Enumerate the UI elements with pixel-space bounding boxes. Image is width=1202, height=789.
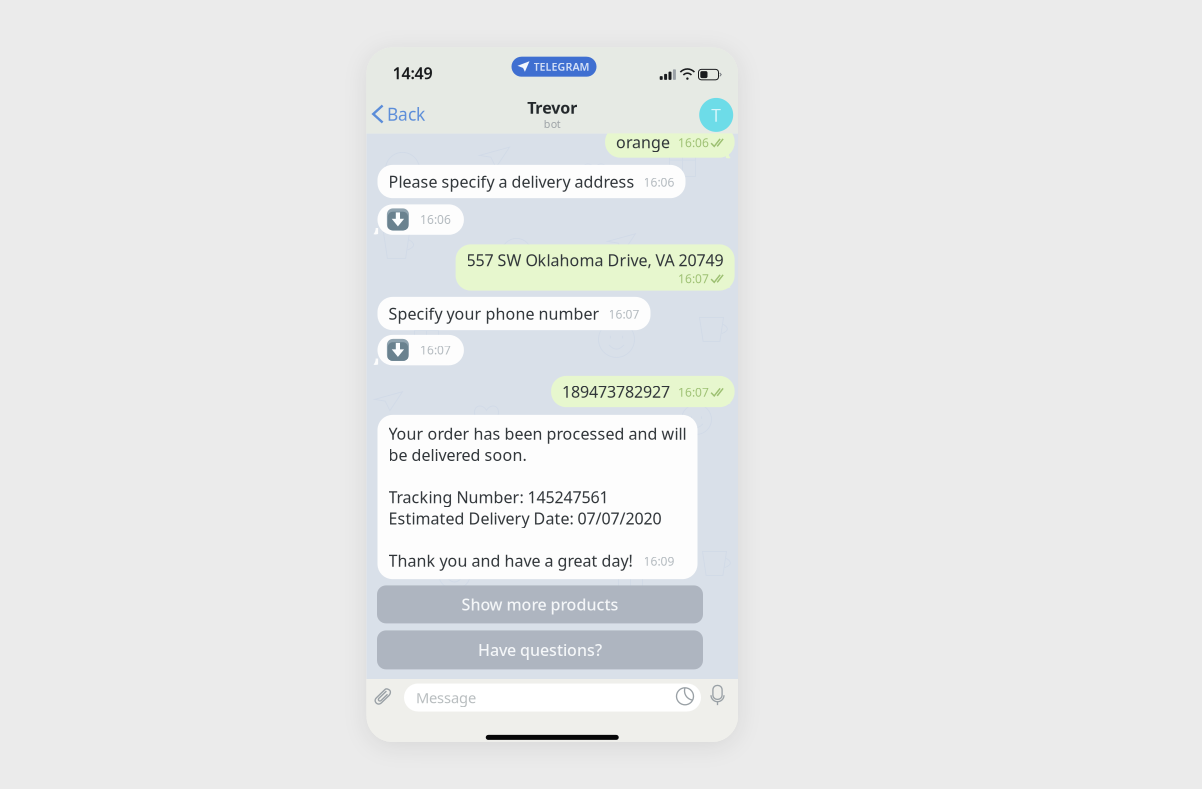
staticText: 16:07 (420, 342, 451, 358)
button[interactable]: Attach (367, 682, 401, 712)
staticText: 16:06 (420, 211, 451, 227)
button[interactable]: Trevor profile (699, 98, 733, 132)
staticText: Estimated Delivery Date: 07/07/2020 (388, 508, 661, 529)
staticText: 16:09 (643, 553, 674, 569)
staticText: Specify your phone number (388, 303, 599, 324)
button[interactable]: Message (404, 683, 701, 711)
staticText: Your order has been processed and will (388, 423, 686, 444)
staticText: Have questions? (478, 639, 602, 660)
staticText: TELEGRAM (533, 60, 589, 74)
staticText: T (711, 103, 721, 126)
button[interactable]: Have questions? (377, 630, 703, 669)
staticText: Show more products (461, 594, 618, 615)
staticText: Message (416, 688, 476, 707)
staticText: 189473782927 (562, 381, 670, 402)
button[interactable]: Schedule message (671, 682, 699, 710)
staticText: 14:49 (392, 62, 432, 84)
staticText: Tracking Number: 145247561 (388, 486, 608, 508)
staticText: 16:07 (608, 306, 639, 322)
staticText: Please specify a delivery address (388, 171, 634, 192)
staticText: 16:07 (678, 271, 709, 286)
button[interactable]: Show more products (377, 585, 703, 623)
staticText: be delivered soon. (388, 444, 526, 465)
staticText: bot (544, 117, 561, 131)
button[interactable]: Back (366, 96, 433, 131)
button[interactable]: Record voice message (705, 681, 731, 709)
staticText: 557 SW Oklahoma Drive, VA 20749 (467, 249, 724, 271)
staticText: 16:06 (643, 174, 674, 190)
staticText: 16:07 (678, 384, 709, 400)
staticText: 16:06 (678, 135, 709, 151)
staticText: Back (387, 102, 425, 125)
staticText: Trevor (527, 97, 577, 118)
staticText: Thank you and have a great day! (388, 550, 632, 571)
staticText: orange (616, 131, 670, 153)
